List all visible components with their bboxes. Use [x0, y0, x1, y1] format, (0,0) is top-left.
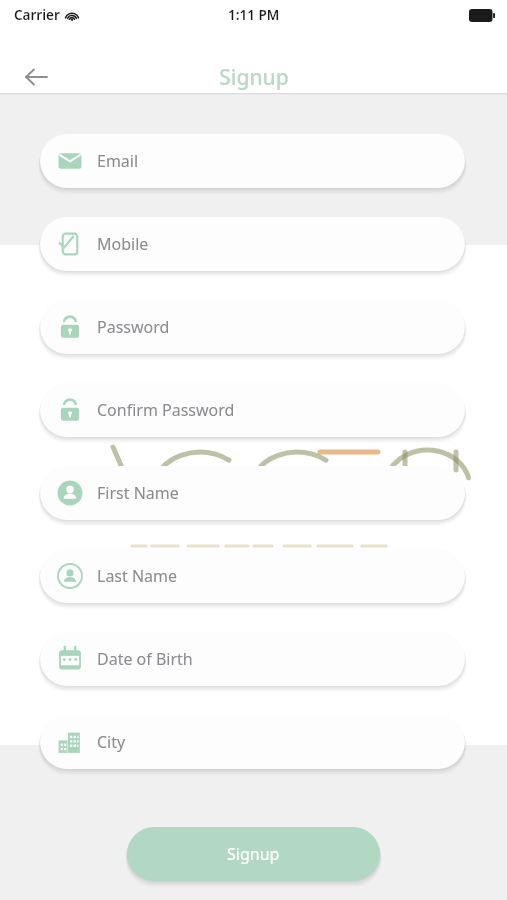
button[interactable]: Signup [127, 827, 380, 881]
button[interactable]: Date of Birth [40, 632, 465, 686]
button[interactable]: Mobile [40, 217, 465, 271]
staticText: First Name [97, 482, 179, 504]
staticText: Confirm Password [97, 399, 235, 421]
button[interactable]: City [40, 715, 465, 769]
staticText: Carrier [14, 6, 60, 24]
staticText: City [97, 731, 126, 753]
staticText: Mobile [97, 233, 149, 255]
staticText: Signup [219, 63, 289, 92]
button[interactable]: Back [14, 55, 58, 99]
button[interactable]: First Name [40, 466, 465, 520]
button[interactable]: Email [40, 134, 465, 188]
button[interactable]: Confirm Password [40, 383, 465, 437]
button[interactable]: Password [40, 300, 465, 354]
staticText: Email [97, 150, 139, 172]
staticText: Signup [227, 843, 280, 865]
staticText: Last Name [97, 565, 178, 587]
button[interactable]: Last Name [40, 549, 465, 603]
staticText: Date of Birth [97, 648, 193, 670]
staticText: 1:11 PM [228, 6, 280, 24]
staticText: Password [97, 316, 170, 338]
